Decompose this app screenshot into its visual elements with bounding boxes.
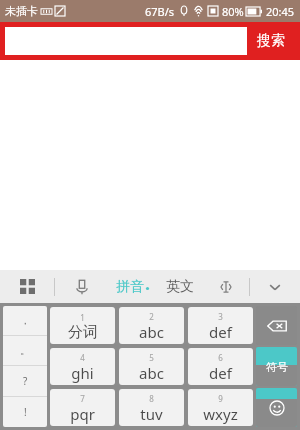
staticText: ， (20, 314, 30, 327)
staticText: 5 (149, 352, 154, 363)
staticText: 2 (149, 311, 154, 322)
button[interactable]: Delete (256, 306, 297, 345)
button[interactable]: 6 (188, 348, 253, 385)
staticText: abc (139, 363, 164, 383)
staticText: 20:45 (266, 4, 295, 19)
button[interactable]: 7 (50, 389, 115, 426)
button[interactable]: ! (3, 397, 47, 427)
button[interactable]: 拼音 (109, 270, 156, 303)
button[interactable]: 。 (3, 336, 47, 365)
staticText: abc (139, 322, 164, 342)
staticText: 。 (20, 344, 30, 357)
button[interactable]: 2 (119, 307, 184, 344)
button[interactable]: ? (3, 366, 47, 396)
button[interactable]: 4 (50, 348, 115, 385)
button[interactable]: Hide keyboard (250, 270, 300, 303)
staticText: 英文 (166, 278, 194, 296)
staticText: ? (23, 374, 28, 388)
staticText: 分词 (68, 323, 98, 342)
staticText: 3 (218, 311, 223, 322)
button[interactable]: 5 (119, 348, 184, 385)
button[interactable]: ， (3, 306, 47, 335)
staticText: 9 (218, 393, 223, 404)
staticText: 1 (80, 312, 85, 323)
button[interactable]: 9 (188, 389, 253, 426)
staticText: 80% (222, 4, 244, 19)
button[interactable]: 8 (119, 389, 184, 426)
button[interactable]: 3 (188, 307, 253, 344)
button[interactable]: 英文 (156, 270, 203, 303)
staticText: 67B/s (145, 4, 175, 19)
staticText: wxyz (203, 404, 238, 424)
staticText: ghi (71, 363, 94, 383)
staticText: 6 (218, 352, 223, 363)
staticText: tuv (140, 404, 163, 424)
staticText: def (209, 322, 232, 342)
button[interactable]: Cursor control (203, 270, 249, 303)
staticText: 8 (149, 393, 154, 404)
staticText: def (209, 363, 232, 383)
button[interactable]: Keyboard layouts (0, 270, 54, 303)
staticText: 拼音 (116, 278, 144, 296)
staticText: ! (24, 405, 27, 419)
staticText: pqr (70, 404, 95, 424)
button[interactable]: 搜索 (247, 27, 295, 55)
staticText: 搜索 (257, 32, 285, 50)
staticText: 7 (80, 393, 85, 404)
button[interactable]: Symbols (256, 347, 297, 386)
staticText: 4 (80, 352, 85, 363)
button[interactable]: Voice input (55, 270, 109, 303)
button[interactable]: 1 (50, 307, 115, 344)
staticText: 符号 (266, 360, 288, 374)
button[interactable]: Emoji (256, 388, 297, 427)
staticText: 未插卡 (5, 4, 38, 18)
